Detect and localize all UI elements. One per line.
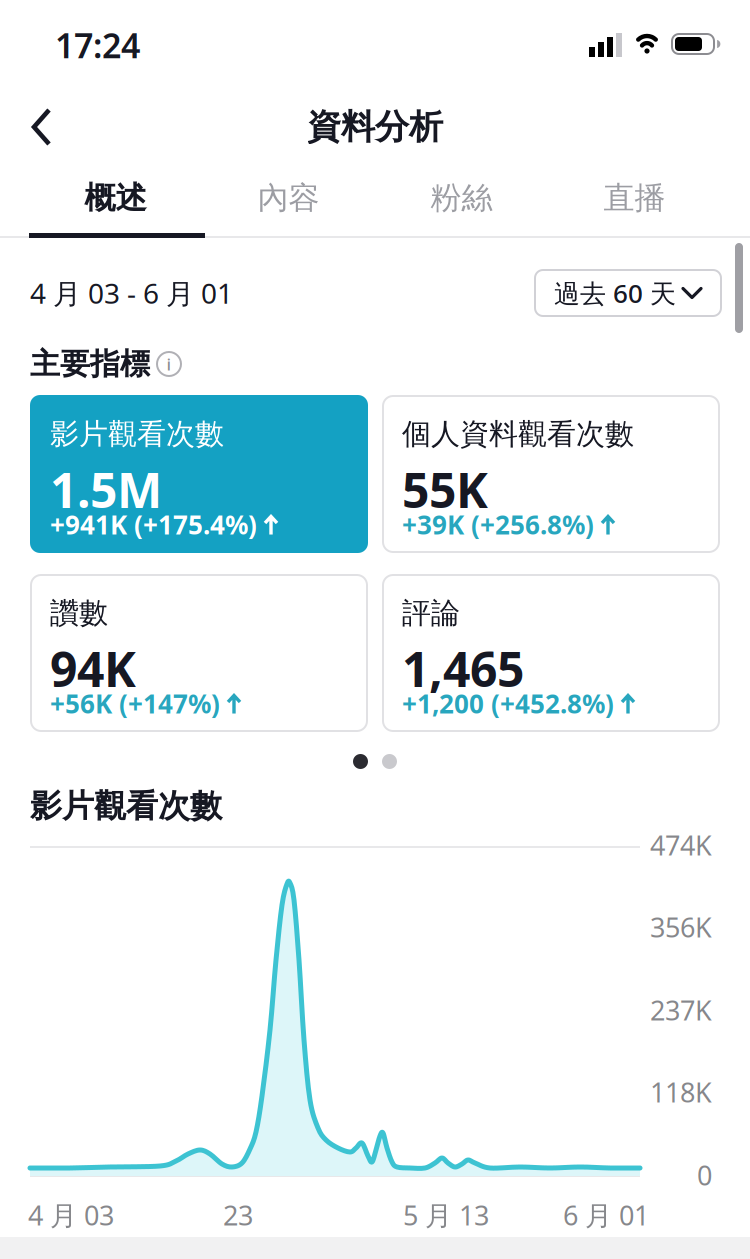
- button[interactable]: 讚數: [30, 574, 368, 732]
- staticText: 影片觀看次數: [30, 786, 222, 826]
- staticText: 0: [697, 1157, 712, 1193]
- button[interactable]: 評論: [382, 574, 720, 732]
- staticText: +56K (+147%): [50, 686, 220, 721]
- button[interactable]: [32, 97, 92, 157]
- staticText: 直播: [603, 179, 665, 217]
- button[interactable]: 粉絲: [375, 167, 548, 229]
- staticText: 1.5M: [50, 458, 162, 521]
- staticText: 237K: [650, 992, 712, 1028]
- staticText: 6 月 01: [563, 1197, 649, 1233]
- staticText: 內容: [257, 179, 319, 217]
- staticText: 粉絲: [430, 179, 492, 217]
- staticText: 356K: [650, 909, 712, 945]
- staticText: 23: [223, 1197, 253, 1233]
- staticText: 17:24: [55, 22, 140, 68]
- staticText: +39K (+256.8%): [402, 507, 594, 542]
- staticText: +941K (+175.4%): [50, 507, 257, 542]
- staticText: 資料分析: [307, 106, 443, 148]
- button[interactable]: 直播: [548, 167, 721, 229]
- staticText: 1,465: [402, 637, 524, 700]
- button[interactable]: 個人資料觀看次數: [382, 395, 720, 553]
- button[interactable]: 影片觀看次數: [30, 395, 368, 553]
- button[interactable]: 內容: [202, 167, 375, 229]
- staticText: 主要指標: [30, 346, 150, 382]
- staticText: 個人資料觀看次數: [402, 416, 634, 452]
- staticText: +1,200 (+452.8%): [402, 686, 614, 721]
- staticText: 讚數: [50, 595, 108, 631]
- staticText: 4 月 03 - 6 月 01: [30, 274, 233, 312]
- button[interactable]: i: [156, 351, 182, 377]
- staticText: 過去 60 天: [554, 276, 676, 310]
- staticText: i: [166, 353, 171, 375]
- staticText: 4 月 03: [28, 1197, 114, 1233]
- staticText: 55K: [402, 458, 488, 521]
- staticText: 474K: [650, 827, 712, 863]
- staticText: 118K: [650, 1074, 712, 1110]
- staticText: 概述: [84, 179, 146, 217]
- staticText: 評論: [402, 595, 460, 631]
- staticText: 5 月 13: [403, 1197, 489, 1233]
- button[interactable]: 概述: [29, 167, 202, 229]
- staticText: 影片觀看次數: [50, 416, 224, 452]
- staticText: 94K: [50, 637, 136, 700]
- button[interactable]: 過去 60 天: [534, 269, 722, 317]
